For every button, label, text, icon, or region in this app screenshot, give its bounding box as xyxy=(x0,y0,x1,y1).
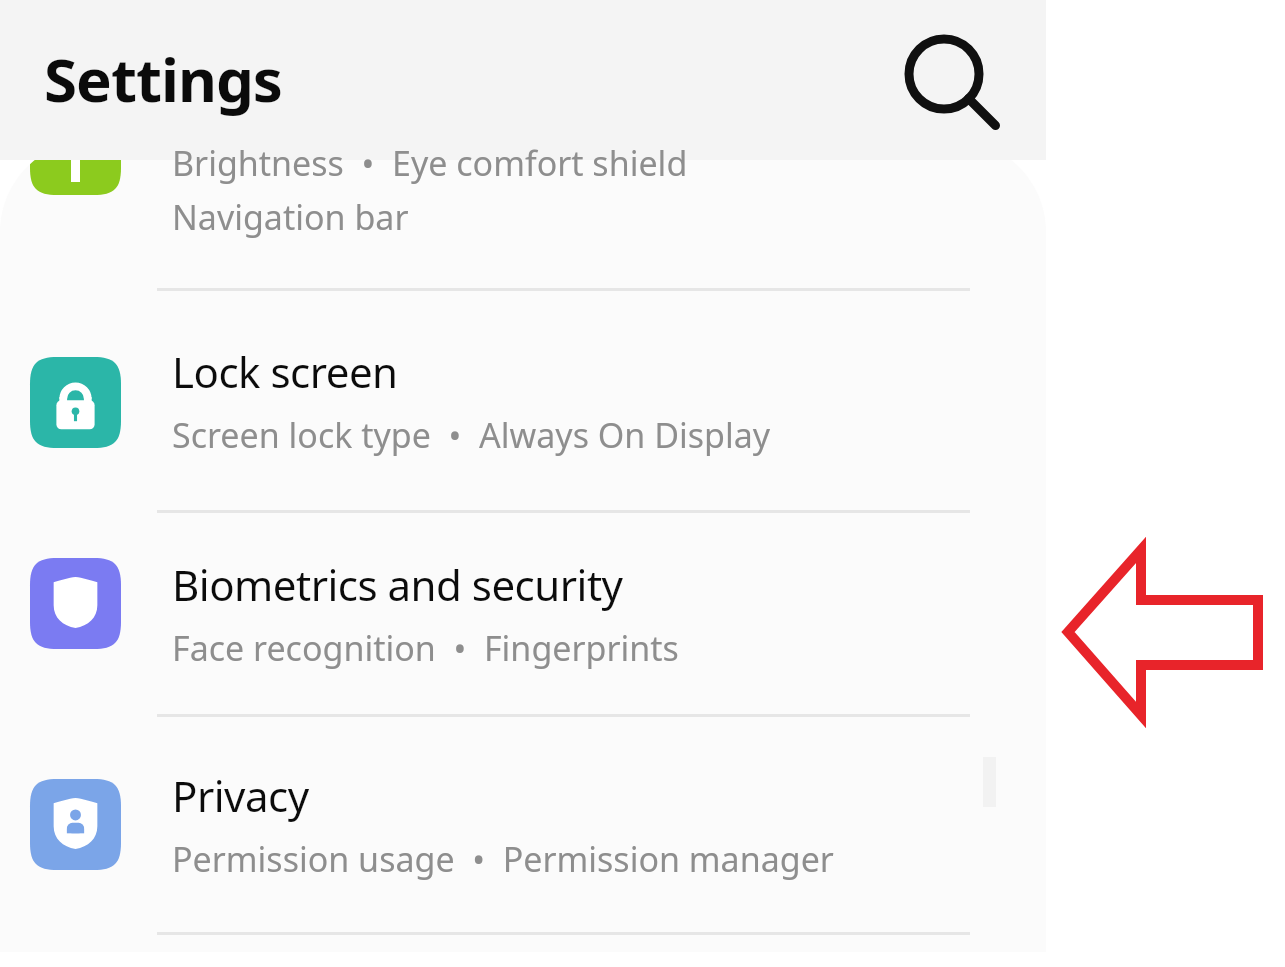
staticText: Privacy xyxy=(172,767,309,824)
button[interactable]: Search settings xyxy=(893,23,995,125)
staticText: Lock screen xyxy=(172,343,398,400)
button[interactable]: Biometrics and security xyxy=(0,513,1046,714)
staticText: Navigation bar xyxy=(172,194,409,240)
staticText: Face recognition • Fingerprints xyxy=(172,625,679,671)
staticText: Brightness • Eye comfort shield xyxy=(172,140,688,186)
staticText: Permission usage • Permission manager xyxy=(172,836,834,882)
staticText: Screen lock type • Always On Display xyxy=(172,412,771,458)
button[interactable]: Lock screen xyxy=(0,291,1046,510)
button[interactable]: Privacy xyxy=(0,717,1046,932)
staticText: Biometrics and security xyxy=(172,556,623,613)
button[interactable]: Brightness • Eye comfort shield xyxy=(0,160,1046,290)
staticText: Settings xyxy=(44,38,282,120)
